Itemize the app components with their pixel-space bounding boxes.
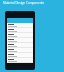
- button[interactable]: [7, 33, 33, 37]
- button[interactable]: [7, 38, 33, 42]
- button[interactable]: [7, 23, 33, 27]
- button[interactable]: [7, 58, 33, 62]
- button[interactable]: [7, 43, 33, 47]
- button[interactable]: [7, 48, 33, 52]
- staticText: Material Design Components: [3, 1, 45, 5]
- button[interactable]: [7, 28, 33, 32]
- button[interactable]: [7, 53, 33, 57]
